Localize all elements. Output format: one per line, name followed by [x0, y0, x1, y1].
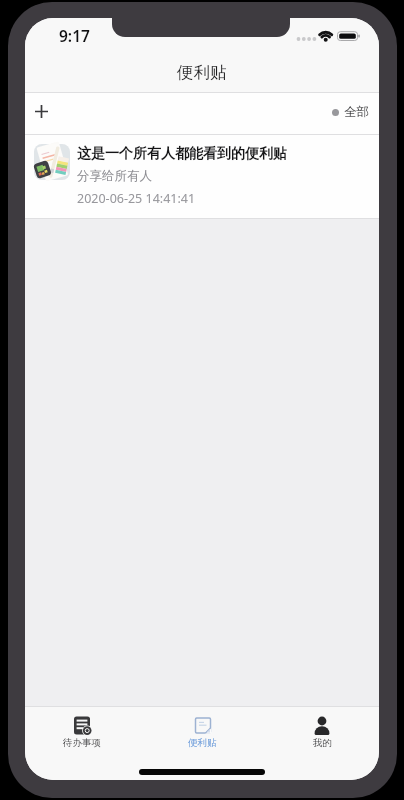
- staticText: 便利贴: [177, 62, 227, 83]
- staticText: 便利贴: [188, 737, 217, 749]
- button[interactable]: [25, 135, 379, 219]
- button[interactable]: [27, 98, 55, 125]
- button[interactable]: 我的: [282, 710, 362, 758]
- staticText: 这是一个所有人都能看到的便利贴: [77, 145, 287, 163]
- staticText: 2020-06-25 14:41:41: [77, 190, 196, 207]
- staticText: 待办事项: [63, 737, 101, 749]
- staticText: 全部: [344, 104, 369, 120]
- button[interactable]: 全部: [299, 98, 369, 125]
- button[interactable]: 便利贴: [162, 710, 242, 758]
- staticText: 我的: [313, 737, 332, 749]
- staticText: 9:17: [59, 25, 90, 46]
- staticText: 分享给所有人: [77, 168, 152, 184]
- button[interactable]: 待办事项: [42, 710, 122, 758]
